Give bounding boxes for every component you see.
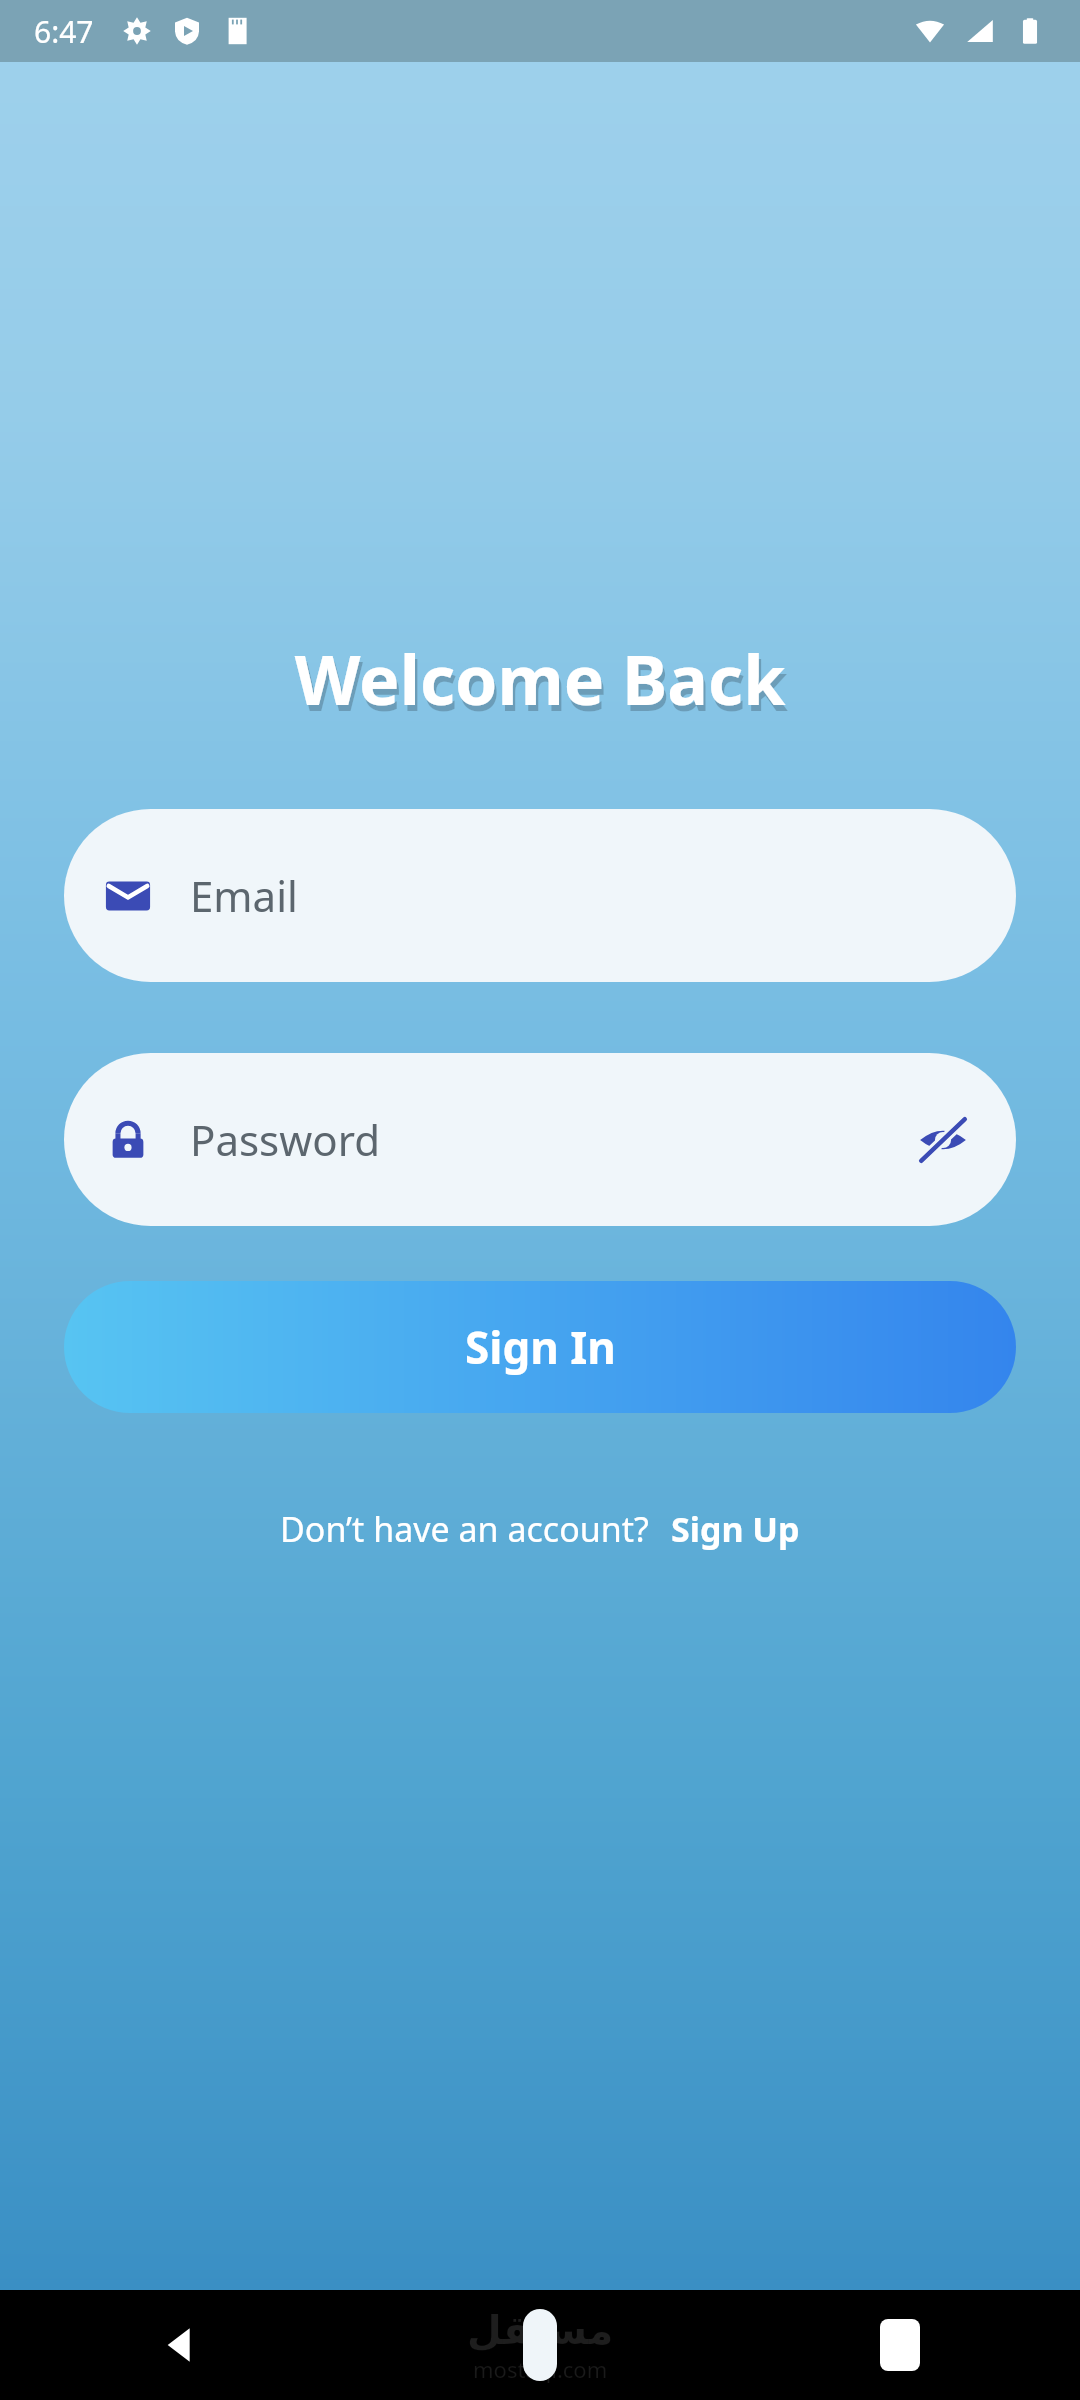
button[interactable]: Email	[64, 809, 1016, 982]
button[interactable]: Sign Up	[671, 1506, 800, 1552]
staticText: مستقل	[467, 2307, 614, 2354]
button[interactable]: Home	[360, 2290, 720, 2400]
staticText: Password	[190, 1111, 380, 1168]
button[interactable]: Toggle password visibility	[910, 1107, 976, 1173]
button[interactable]: Back	[0, 2290, 360, 2400]
button[interactable]: Password	[64, 1053, 1016, 1226]
button[interactable]: Sign In	[64, 1281, 1016, 1413]
staticText: mostaql.com	[473, 2354, 608, 2384]
staticText: Email	[190, 867, 298, 924]
staticText: Welcome Back	[69, 638, 1016, 731]
staticText: Sign Up	[671, 1506, 800, 1552]
staticText: 6:47	[34, 11, 94, 52]
button[interactable]: Recent apps	[720, 2290, 1080, 2400]
staticText: Welcome Back	[64, 632, 1016, 725]
staticText: Sign In	[465, 1317, 616, 1377]
staticText: Don’t have an account?	[280, 1506, 649, 1552]
